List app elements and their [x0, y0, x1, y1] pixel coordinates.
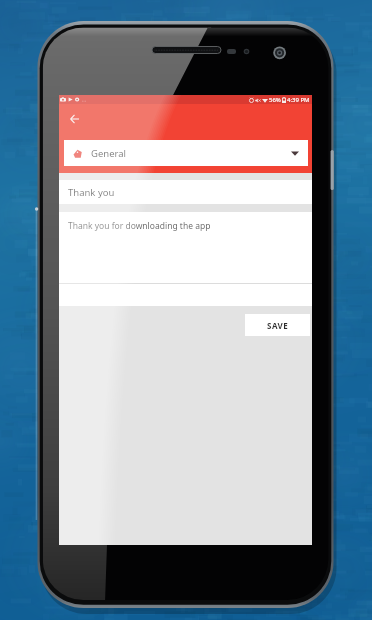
staticText: 4:39 PM [287, 96, 310, 104]
staticText: SAVE [267, 320, 289, 331]
button[interactable]: Thank you for downloading the app [59, 212, 312, 306]
button[interactable]: SAVE [245, 314, 310, 336]
button[interactable]: Thank you [59, 180, 312, 204]
staticText: Thank you for downloading the app [68, 220, 211, 232]
button[interactable]: General [64, 140, 308, 166]
staticText: General [91, 147, 127, 160]
staticText: 56% [269, 96, 281, 104]
button[interactable]: Back [62, 107, 86, 131]
staticText: Thank you [68, 186, 115, 199]
